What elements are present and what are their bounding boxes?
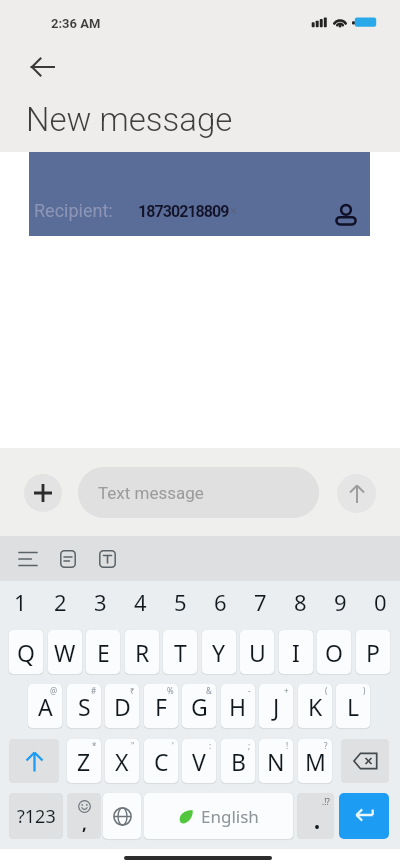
button[interactable]: 8 bbox=[280, 587, 320, 615]
staticText: % bbox=[167, 685, 174, 696]
staticText: @ bbox=[50, 685, 58, 696]
staticText: New message bbox=[26, 100, 233, 139]
staticText: Y bbox=[212, 637, 226, 668]
button[interactable]: 3 bbox=[80, 587, 120, 615]
button[interactable]: A bbox=[28, 684, 62, 728]
button[interactable]: 9 bbox=[320, 587, 360, 615]
button[interactable]: Menu bbox=[11, 542, 45, 576]
button[interactable]: Change keyboard language bbox=[103, 793, 141, 839]
staticText: " bbox=[131, 740, 135, 751]
button[interactable]: T bbox=[163, 630, 197, 674]
button[interactable]: Add attachment bbox=[24, 474, 62, 512]
button[interactable]: M bbox=[298, 739, 332, 783]
button[interactable]: 1 bbox=[0, 587, 40, 615]
staticText: T bbox=[174, 637, 187, 668]
button[interactable]: W bbox=[48, 630, 82, 674]
staticText: ' bbox=[172, 740, 174, 751]
staticText: # bbox=[91, 685, 97, 696]
button[interactable]: R bbox=[125, 630, 159, 674]
button[interactable]: X bbox=[105, 739, 139, 783]
staticText: K bbox=[308, 691, 323, 722]
staticText: English bbox=[201, 805, 259, 828]
button[interactable]: Back bbox=[21, 45, 65, 89]
button[interactable]: Z bbox=[67, 739, 101, 783]
button[interactable]: P bbox=[356, 630, 390, 674]
staticText: 1 bbox=[14, 587, 27, 615]
button[interactable]: ?123 bbox=[9, 793, 63, 839]
staticText: C bbox=[154, 746, 169, 777]
button[interactable]: 7 bbox=[240, 587, 280, 615]
staticText: F bbox=[155, 691, 167, 722]
button[interactable]: Recipient: bbox=[29, 152, 370, 236]
button[interactable]: G bbox=[182, 684, 216, 728]
button[interactable]: K bbox=[298, 684, 332, 728]
button[interactable]: S bbox=[67, 684, 101, 728]
staticText: M bbox=[305, 746, 326, 777]
button[interactable]: 0 bbox=[360, 587, 400, 615]
staticText: B bbox=[231, 746, 246, 777]
staticText: X bbox=[115, 746, 129, 777]
button[interactable]: J bbox=[259, 684, 293, 728]
button[interactable]: 4 bbox=[120, 587, 160, 615]
staticText: * bbox=[92, 740, 97, 751]
staticText: 8 bbox=[294, 587, 307, 615]
button[interactable]: 2 bbox=[40, 587, 80, 615]
button[interactable]: Enter bbox=[339, 793, 389, 839]
staticText: .!? bbox=[322, 796, 330, 807]
staticText: 6 bbox=[214, 587, 227, 615]
staticText: P bbox=[366, 637, 380, 668]
button[interactable]: Contacts bbox=[326, 194, 366, 234]
staticText: ? bbox=[324, 740, 328, 751]
staticText: 2:36 AM bbox=[51, 16, 101, 31]
button[interactable]: Text message bbox=[78, 467, 319, 518]
staticText: U bbox=[249, 637, 266, 668]
staticText: D bbox=[114, 691, 131, 722]
staticText: 9 bbox=[334, 587, 347, 615]
button[interactable]: Shift bbox=[9, 739, 59, 783]
button[interactable]: E bbox=[86, 630, 120, 674]
button[interactable]: I bbox=[279, 630, 313, 674]
staticText: A bbox=[38, 691, 53, 722]
button[interactable]: D bbox=[105, 684, 139, 728]
staticText: H bbox=[229, 691, 247, 722]
staticText: ₹ bbox=[130, 685, 135, 696]
staticText: N bbox=[267, 746, 285, 777]
button[interactable]: N bbox=[259, 739, 293, 783]
button[interactable]: U bbox=[240, 630, 274, 674]
button[interactable]: O bbox=[317, 630, 351, 674]
button[interactable]: Text formatting bbox=[90, 542, 124, 576]
staticText: - bbox=[248, 685, 251, 696]
button[interactable]: H bbox=[221, 684, 255, 728]
button[interactable]: Y bbox=[202, 630, 236, 674]
button[interactable]: B bbox=[221, 739, 255, 783]
button[interactable]: C bbox=[144, 739, 178, 783]
staticText: ; bbox=[248, 740, 251, 751]
staticText: S bbox=[78, 691, 91, 722]
staticText: ! bbox=[286, 740, 289, 751]
button[interactable]: Space bbox=[144, 793, 293, 839]
staticText: 18730218809 bbox=[138, 202, 229, 221]
button[interactable]: Send bbox=[337, 474, 376, 513]
staticText: J bbox=[273, 691, 280, 722]
button[interactable]: V bbox=[182, 739, 216, 783]
staticText: E bbox=[97, 637, 110, 668]
staticText: ) bbox=[363, 685, 366, 696]
staticText: Z bbox=[77, 746, 91, 777]
staticText: G bbox=[191, 691, 208, 722]
button[interactable]: L bbox=[336, 684, 370, 728]
staticText: Q bbox=[17, 637, 35, 668]
button[interactable]: 5 bbox=[160, 587, 200, 615]
staticText: 4 bbox=[134, 587, 147, 615]
staticText: ( bbox=[325, 685, 328, 696]
button[interactable]: Emoji bbox=[67, 793, 101, 839]
button[interactable]: F bbox=[144, 684, 178, 728]
button[interactable]: Period bbox=[297, 793, 334, 839]
staticText: 2 bbox=[54, 587, 67, 615]
button[interactable]: Q bbox=[9, 630, 43, 674]
button[interactable]: 6 bbox=[200, 587, 240, 615]
button[interactable]: Backspace bbox=[341, 739, 389, 783]
staticText: W bbox=[54, 637, 76, 668]
button[interactable]: Clipboard bbox=[51, 542, 85, 576]
staticText: O bbox=[325, 637, 343, 668]
staticText: ?123 bbox=[17, 804, 56, 829]
